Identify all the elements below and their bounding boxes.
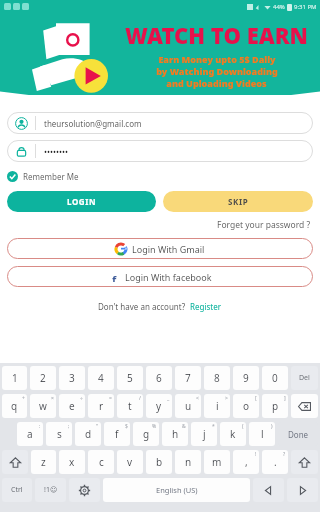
button[interactable]: f — [104, 422, 130, 446]
button[interactable]: j — [191, 422, 217, 446]
button[interactable]: 9 — [233, 366, 259, 390]
button[interactable]: k — [220, 422, 246, 446]
staticText: l — [261, 427, 264, 441]
button[interactable]: b — [146, 450, 172, 474]
staticText: Done — [288, 429, 309, 440]
staticText: $ — [125, 423, 128, 430]
staticText: x — [69, 455, 75, 469]
button[interactable]: 3 — [59, 366, 85, 390]
button[interactable]: p — [262, 394, 288, 418]
button[interactable]: v — [117, 450, 143, 474]
staticText: / — [139, 395, 141, 402]
button[interactable]: 0 — [262, 366, 288, 390]
staticText: 9:31 PM — [294, 3, 317, 11]
button[interactable]: Backspace — [291, 394, 318, 418]
staticText: 2 — [40, 371, 46, 385]
button[interactable]: !1☺ — [35, 478, 66, 502]
button[interactable]: 4 — [88, 366, 114, 390]
button[interactable]: t — [117, 394, 143, 418]
button[interactable]: g — [133, 422, 159, 446]
button[interactable]: Right — [287, 478, 318, 502]
staticText: k — [230, 427, 236, 441]
staticText: , — [245, 455, 248, 469]
button[interactable]: x — [59, 450, 85, 474]
staticText: " — [96, 423, 99, 430]
staticText: Login With Gmail — [132, 243, 205, 255]
button[interactable]: 1 — [2, 366, 27, 390]
button[interactable]: 6 — [146, 366, 172, 390]
button[interactable]: d — [75, 422, 101, 446]
button[interactable]: Register — [190, 301, 222, 312]
button[interactable]: Shift — [2, 450, 28, 474]
staticText: theursolution@gmail.com — [44, 118, 142, 129]
button[interactable]: , — [233, 450, 259, 474]
staticText: : — [39, 423, 41, 430]
button[interactable]: Ctrl — [2, 478, 32, 502]
button[interactable]: Login With Gmail — [7, 238, 313, 259]
button[interactable]: y — [146, 394, 172, 418]
button[interactable]: n — [175, 450, 201, 474]
button[interactable]: English (US) — [103, 478, 250, 502]
staticText: 8 — [214, 371, 220, 385]
button[interactable]: Left — [253, 478, 284, 502]
staticText: f — [112, 272, 117, 282]
button[interactable]: r — [88, 394, 114, 418]
button[interactable]: SKIP — [163, 191, 313, 212]
staticText: English (US) — [156, 485, 198, 495]
staticText: t — [128, 399, 132, 413]
button[interactable]: s — [46, 422, 72, 446]
button[interactable]: Del — [291, 366, 318, 390]
button[interactable]: Remember Me — [7, 170, 79, 183]
staticText: 1 — [12, 371, 18, 385]
staticText: and Uploading Videos — [166, 77, 267, 89]
button[interactable]: . — [262, 450, 288, 474]
staticText: d — [85, 427, 92, 441]
button[interactable]: 2 — [30, 366, 56, 390]
staticText: z — [41, 455, 46, 469]
staticText: 6 — [156, 371, 162, 385]
staticText: [ — [255, 395, 257, 402]
staticText: _ — [167, 395, 170, 402]
button[interactable]: z — [31, 450, 56, 474]
button[interactable]: m — [204, 450, 230, 474]
staticText: ! — [255, 451, 257, 458]
button[interactable]: f — [7, 266, 313, 287]
button[interactable]: •••••••• — [7, 140, 313, 162]
staticText: > — [225, 395, 228, 402]
button[interactable]: u — [175, 394, 201, 418]
button[interactable]: 5 — [117, 366, 143, 390]
staticText: c — [99, 455, 104, 469]
button[interactable]: theursolution@gmail.com — [7, 112, 313, 134]
staticText: s — [57, 427, 62, 441]
button[interactable]: Forget your password ? — [215, 219, 313, 231]
staticText: i — [216, 399, 219, 413]
staticText: a — [27, 427, 33, 441]
staticText: × — [51, 395, 54, 402]
button[interactable]: Shift — [291, 450, 318, 474]
staticText: m — [212, 455, 222, 469]
staticText: j — [203, 427, 206, 441]
button[interactable]: o — [233, 394, 259, 418]
staticText: g — [143, 427, 150, 441]
button[interactable]: c — [88, 450, 114, 474]
staticText: WATCH TO EARN — [125, 20, 308, 50]
button[interactable]: Done — [278, 422, 318, 446]
staticText: * — [212, 423, 215, 430]
button[interactable]: i — [204, 394, 230, 418]
staticText: & — [182, 423, 186, 430]
staticText: e — [69, 399, 75, 413]
staticText: ) — [271, 423, 273, 430]
button[interactable]: q — [2, 394, 27, 418]
button[interactable]: 7 — [175, 366, 201, 390]
button[interactable]: LOGIN — [7, 191, 156, 212]
button[interactable]: Settings — [69, 478, 100, 502]
button[interactable]: e — [59, 394, 85, 418]
staticText: r — [99, 399, 104, 413]
button[interactable]: h — [162, 422, 188, 446]
button[interactable]: l — [249, 422, 275, 446]
button[interactable]: a — [17, 422, 43, 446]
staticText: 4 — [98, 371, 104, 385]
staticText: 7 — [185, 371, 191, 385]
button[interactable]: w — [30, 394, 56, 418]
button[interactable]: 8 — [204, 366, 230, 390]
